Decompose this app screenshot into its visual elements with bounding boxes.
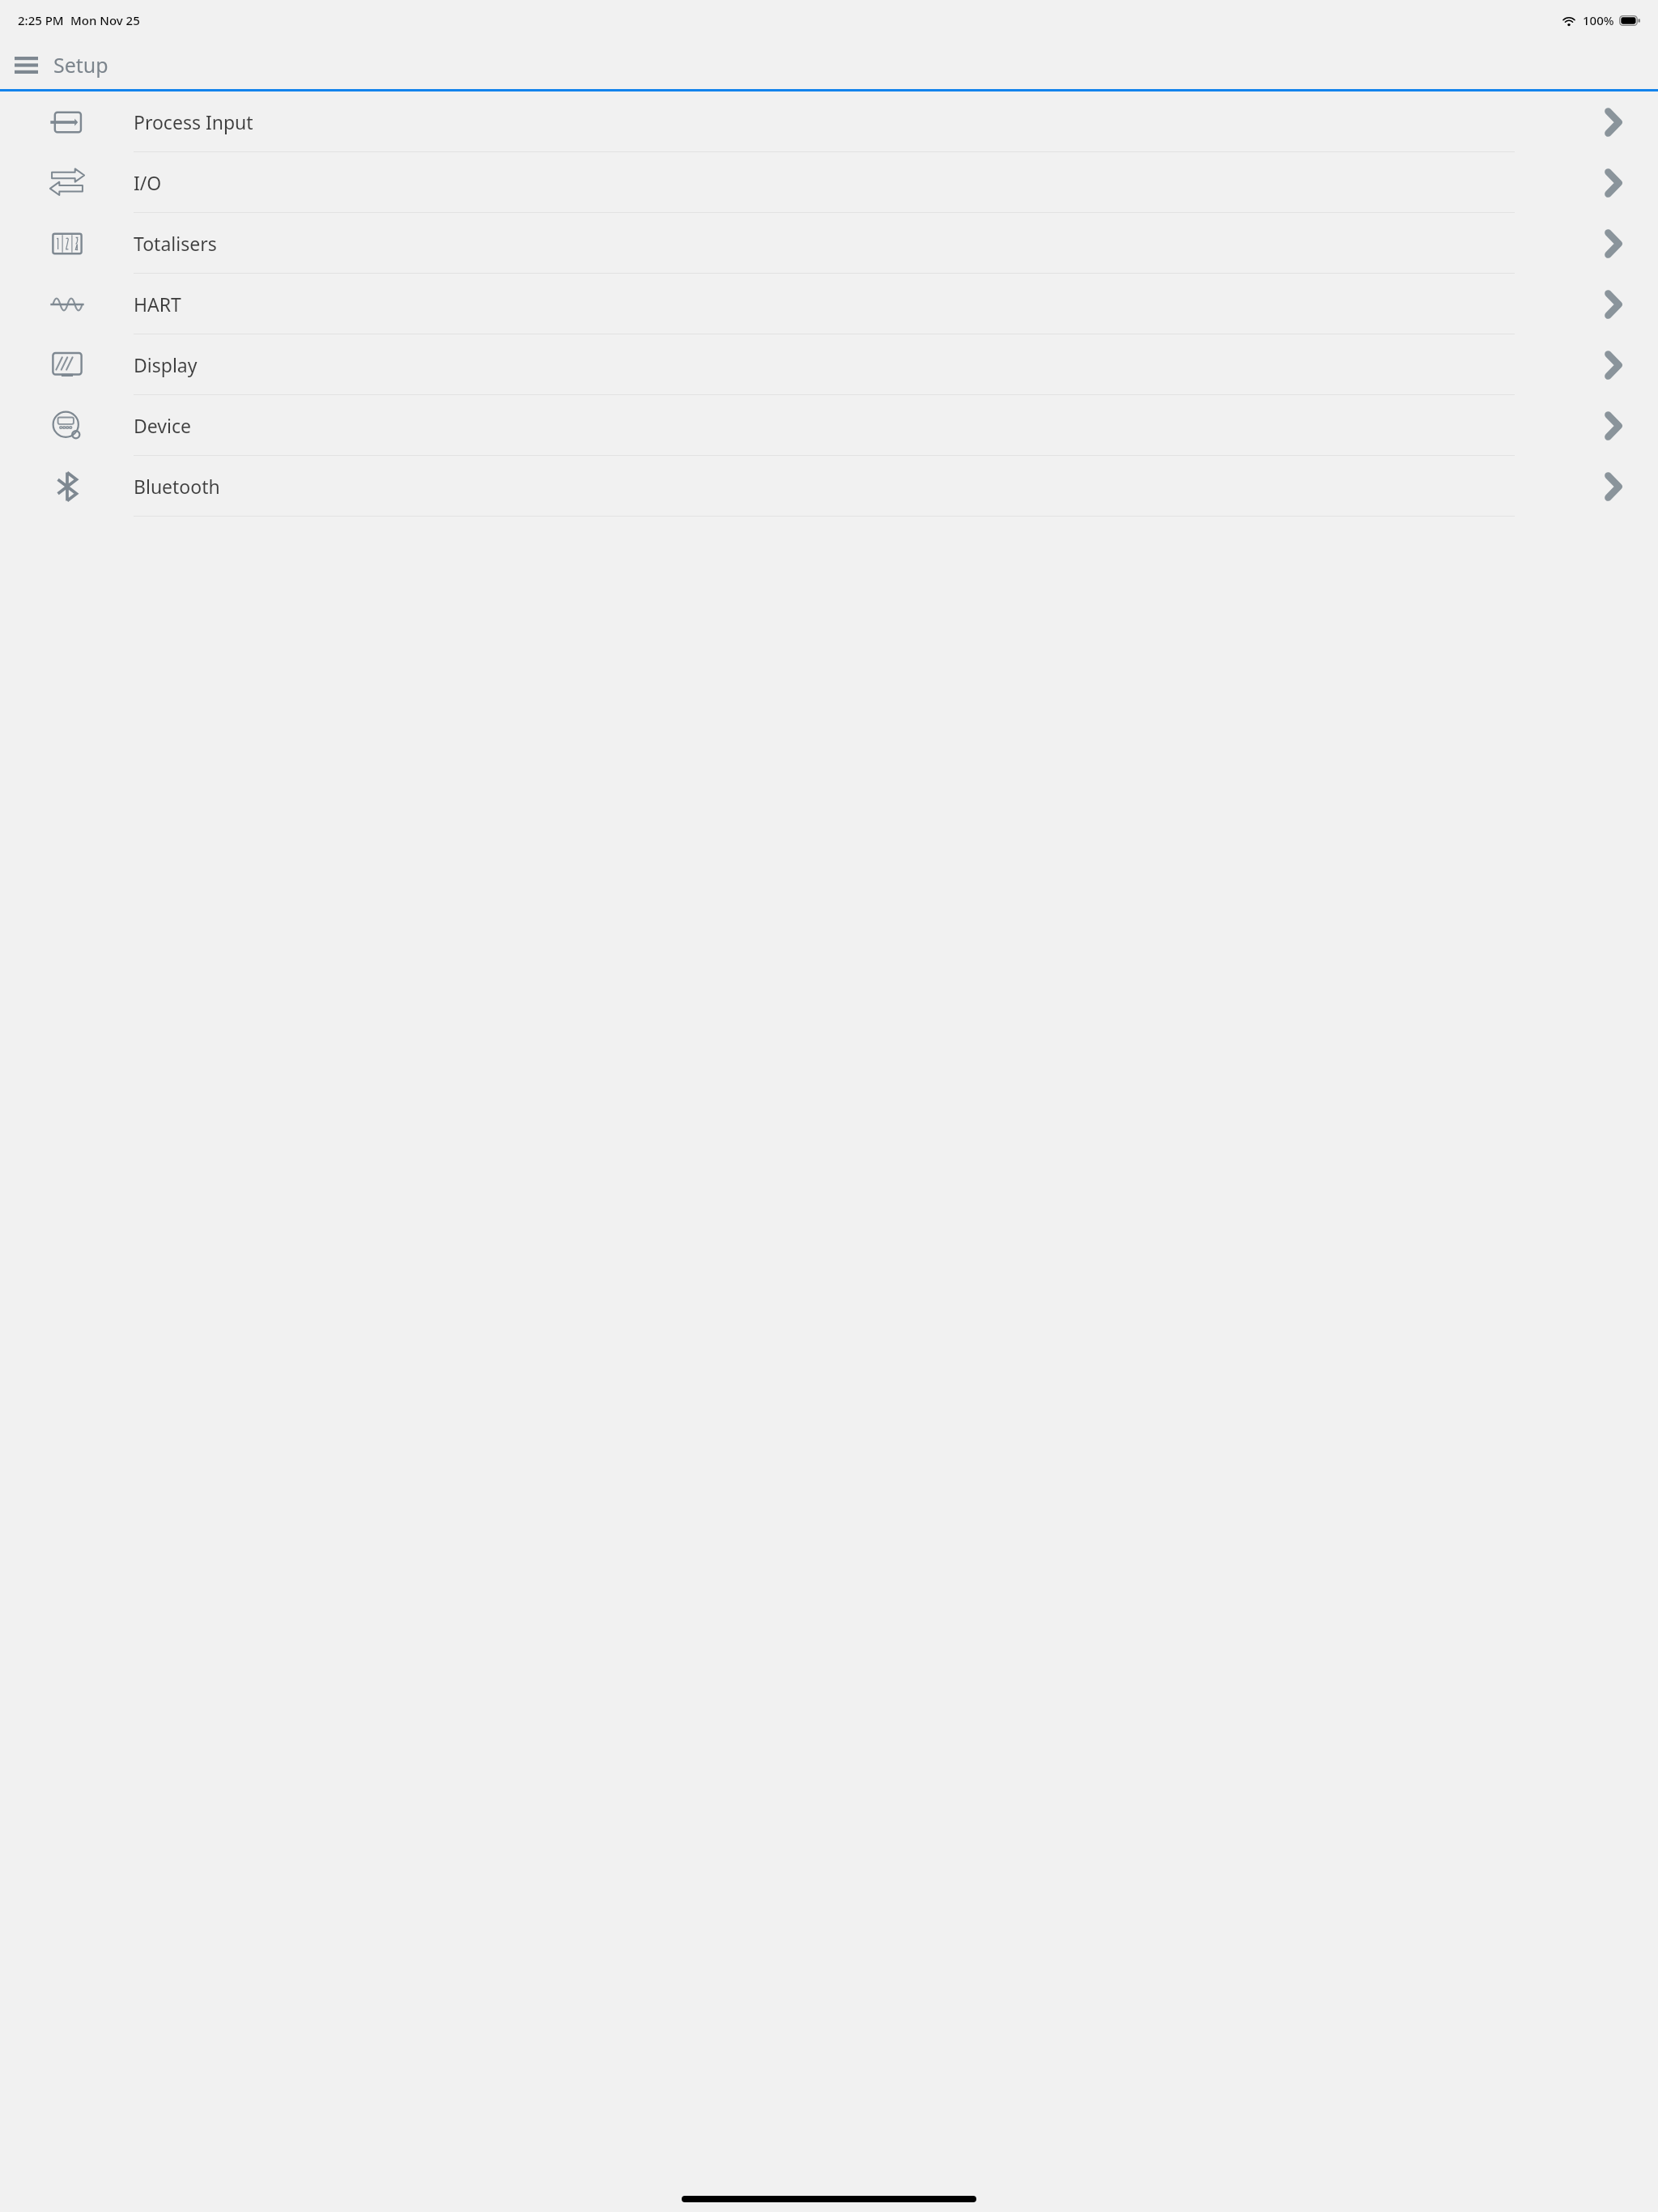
staticText: 100% [1583, 12, 1614, 28]
button[interactable]: Device [0, 395, 1658, 456]
button[interactable]: Bluetooth [0, 456, 1658, 517]
staticText: Setup [53, 51, 108, 79]
button[interactable]: Totalisers [0, 213, 1658, 274]
button[interactable]: I/O [0, 152, 1658, 213]
staticText: Bluetooth [134, 474, 220, 499]
button[interactable]: Process Input [0, 91, 1658, 152]
staticText: Process Input [134, 109, 253, 134]
button[interactable]: Display [0, 334, 1658, 395]
staticText: 2:25 PM [18, 12, 64, 28]
staticText: Totalisers [134, 231, 217, 256]
staticText: HART [134, 291, 181, 317]
button[interactable]: Open navigation menu [5, 44, 47, 86]
staticText: Display [134, 352, 198, 377]
button[interactable]: HART [0, 274, 1658, 334]
staticText: I/O [134, 170, 162, 195]
staticText: Mon Nov 25 [70, 12, 140, 28]
staticText: Device [134, 413, 191, 438]
